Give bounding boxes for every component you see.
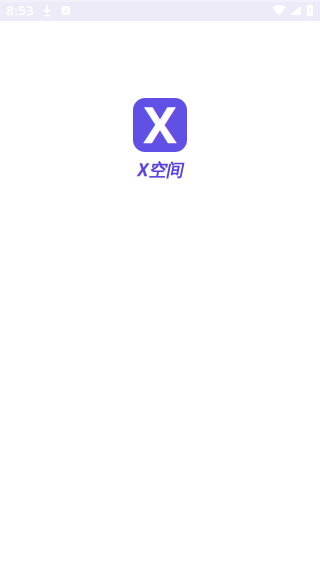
staticText: 8:53 [6, 1, 34, 19]
staticText: X空间 [137, 158, 182, 181]
button[interactable]: X空间 [133, 98, 187, 182]
staticText: X [143, 90, 177, 157]
